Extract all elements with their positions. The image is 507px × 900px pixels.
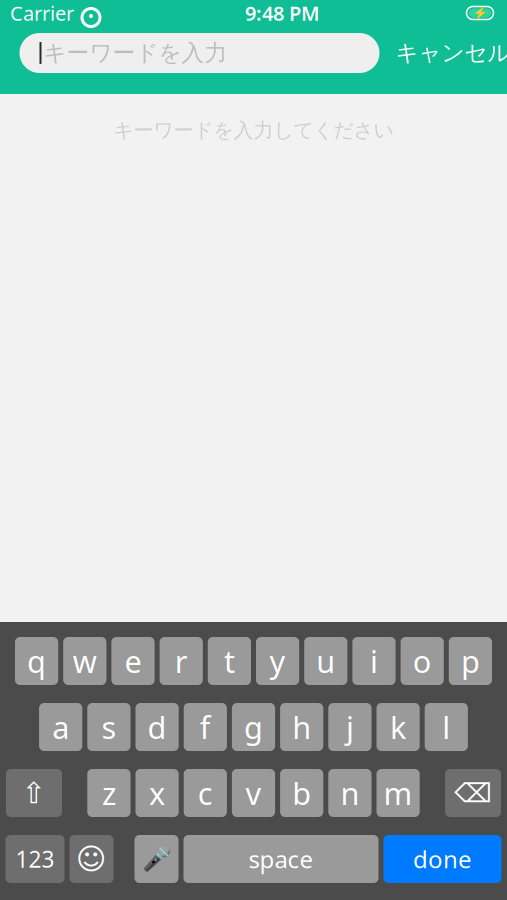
button[interactable]: t [208, 637, 251, 685]
staticText: x [149, 773, 165, 813]
staticText: c [198, 773, 213, 813]
staticText: 123 [15, 844, 54, 874]
button[interactable]: 123 [5, 835, 64, 883]
staticText: z [102, 773, 116, 813]
staticText: y [270, 641, 286, 681]
button[interactable]: o [401, 637, 444, 685]
staticText: Carrier [10, 0, 74, 26]
staticText: d [148, 707, 167, 747]
button[interactable]: k [376, 703, 420, 751]
button[interactable]: Shift [6, 769, 62, 817]
button[interactable]: s [87, 703, 130, 751]
button[interactable]: Dictate [134, 835, 178, 883]
staticText: g [244, 707, 263, 747]
button[interactable]: e [111, 637, 155, 685]
button[interactable]: done [383, 835, 501, 883]
button[interactable]: space [183, 835, 378, 883]
staticText: a [52, 707, 69, 747]
button[interactable]: h [280, 703, 323, 751]
staticText: done [413, 843, 472, 875]
staticText: ☺ [76, 842, 107, 876]
button[interactable]: g [232, 703, 275, 751]
staticText: u [316, 641, 335, 681]
staticText: s [101, 707, 116, 747]
staticText: 9:48 PM [245, 0, 320, 26]
button[interactable]: j [328, 703, 371, 751]
button[interactable]: n [328, 769, 371, 817]
button[interactable]: y [256, 637, 299, 685]
button[interactable]: キャンセル [387, 33, 507, 73]
staticText: h [292, 707, 311, 747]
staticText: ⇧ [21, 776, 46, 810]
staticText: o [413, 641, 432, 681]
button[interactable]: c [184, 769, 227, 817]
staticText: m [384, 773, 413, 813]
staticText: ⌫ [454, 778, 492, 808]
staticText: i [370, 641, 378, 681]
button[interactable]: r [160, 637, 203, 685]
staticText: t [224, 641, 235, 681]
staticText: f [200, 707, 211, 747]
staticText: space [248, 843, 313, 875]
button[interactable]: d [135, 703, 179, 751]
button[interactable]: u [304, 637, 347, 685]
staticText: r [175, 641, 188, 681]
button[interactable]: Delete [445, 769, 501, 817]
button[interactable]: z [87, 769, 130, 817]
staticText: 🎤 [141, 845, 171, 873]
staticText: k [390, 707, 406, 747]
button[interactable]: l [425, 703, 468, 751]
staticText: キーワードを入力 [43, 39, 227, 67]
staticText: q [27, 641, 46, 681]
staticText: e [124, 641, 141, 681]
button[interactable]: b [280, 769, 323, 817]
staticText: p [461, 641, 480, 681]
button[interactable]: i [352, 637, 396, 685]
staticText: n [340, 773, 359, 813]
button[interactable]: a [39, 703, 82, 751]
staticText: b [292, 773, 311, 813]
button[interactable]: p [449, 637, 492, 685]
button[interactable]: m [376, 769, 420, 817]
staticText: w [73, 641, 97, 681]
staticText: キャンセル [395, 39, 507, 67]
staticText: キーワードを入力してください [113, 118, 393, 143]
button[interactable]: x [135, 769, 179, 817]
button[interactable]: Emoji [69, 835, 113, 883]
staticText: v [245, 773, 261, 813]
button[interactable]: v [232, 769, 275, 817]
staticText: j [346, 707, 354, 747]
button[interactable]: q [15, 637, 58, 685]
button[interactable]: w [63, 637, 106, 685]
staticText: ⚡ [472, 6, 487, 20]
button[interactable]: f [184, 703, 227, 751]
staticText: l [442, 707, 450, 747]
